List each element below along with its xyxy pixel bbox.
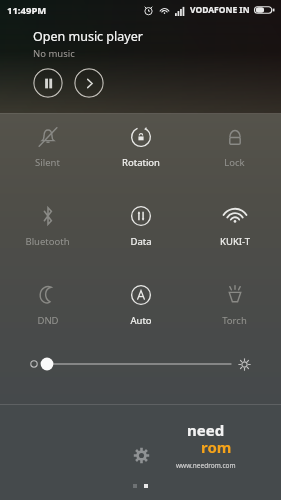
button[interactable]: Settings <box>124 438 158 472</box>
button[interactable]: Silent <box>1 122 94 171</box>
staticText: No music <box>33 47 75 60</box>
staticText: KUKI-T <box>220 235 250 248</box>
staticText: 11:49PM <box>7 4 47 17</box>
staticText: rom <box>201 437 232 457</box>
staticText: Bluetooth <box>25 235 70 248</box>
button[interactable]: Next <box>74 68 104 98</box>
button[interactable]: Bluetooth <box>1 201 94 250</box>
staticText: DND <box>37 314 59 327</box>
staticText: Lock <box>224 156 245 169</box>
button[interactable] <box>30 351 251 377</box>
staticText: Open music player <box>33 28 143 45</box>
staticText: VODAFONE IN <box>190 4 250 16</box>
button[interactable]: Rotation <box>94 122 187 171</box>
button[interactable]: KUKI-T <box>188 201 281 250</box>
button[interactable]: Data <box>94 201 187 250</box>
button[interactable]: Pause <box>33 68 63 98</box>
staticText: www.needrom.com <box>176 461 236 470</box>
staticText: Data <box>130 235 152 248</box>
button[interactable]: Torch <box>188 280 281 329</box>
staticText: Silent <box>35 156 60 169</box>
button[interactable]: Auto <box>94 280 187 329</box>
staticText: Rotation <box>122 156 160 169</box>
staticText: Auto <box>130 314 152 327</box>
staticText: Torch <box>222 314 247 327</box>
button[interactable]: DND <box>1 280 94 329</box>
staticText: need <box>187 420 225 440</box>
button[interactable]: Lock <box>188 122 281 171</box>
